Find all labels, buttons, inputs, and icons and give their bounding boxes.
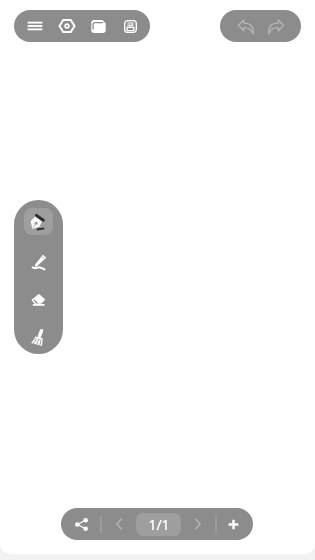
button[interactable]: Menu — [19, 10, 51, 42]
button[interactable]: Pen tool — [24, 208, 53, 235]
button[interactable]: Add page — [217, 508, 253, 540]
button[interactable]: Save — [115, 10, 145, 42]
button[interactable]: Pencil tool — [24, 248, 53, 275]
staticText: 1/1 — [148, 515, 170, 534]
button[interactable]: 1/1 — [136, 513, 181, 536]
button[interactable]: Previous page — [102, 508, 136, 540]
button[interactable]: Redo — [261, 10, 290, 42]
button[interactable]: Settings — [51, 10, 83, 42]
button[interactable]: Share — [61, 508, 100, 540]
button[interactable]: Undo — [231, 10, 261, 42]
button[interactable]: Clear all — [24, 324, 53, 351]
button[interactable]: Next page — [181, 508, 215, 540]
button[interactable]: Open folder — [83, 10, 115, 42]
button[interactable]: Eraser tool — [24, 286, 53, 313]
